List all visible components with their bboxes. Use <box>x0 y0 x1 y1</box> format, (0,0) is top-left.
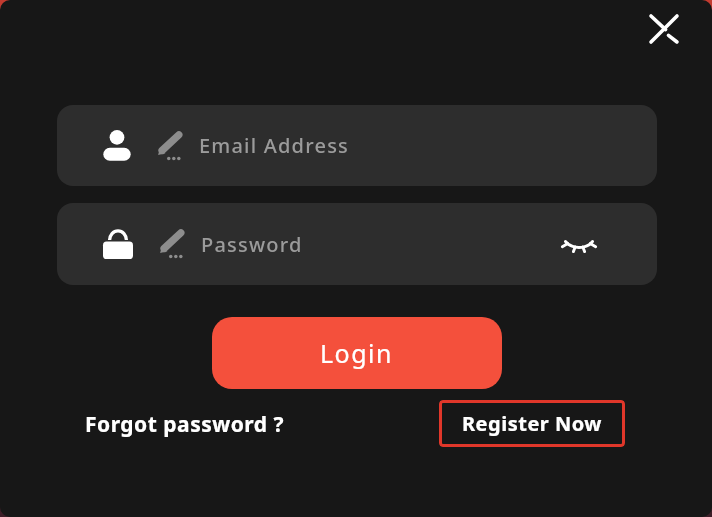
button[interactable] <box>645 10 683 48</box>
staticText: Forgot password ? <box>85 410 285 439</box>
button[interactable] <box>557 222 601 266</box>
button[interactable]: Email Address <box>57 105 657 186</box>
staticText: Register Now <box>462 410 602 437</box>
button[interactable]: Password <box>57 203 657 285</box>
button[interactable]: Login <box>212 317 502 389</box>
button[interactable]: Register Now <box>439 400 625 447</box>
staticText: Login <box>320 336 394 370</box>
button[interactable]: Forgot password ? <box>85 405 285 443</box>
staticText: Email Address <box>199 132 349 159</box>
staticText: Password <box>201 231 303 258</box>
